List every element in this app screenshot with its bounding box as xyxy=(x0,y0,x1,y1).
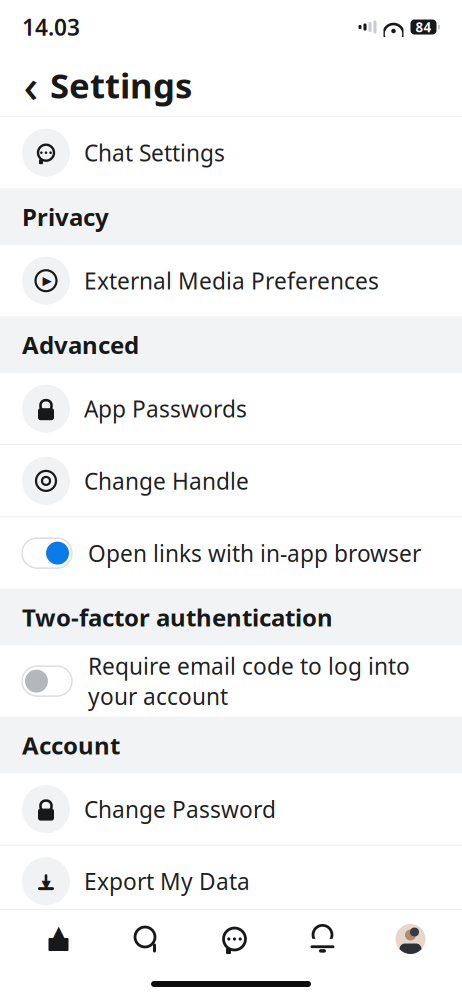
staticText: 14.03 xyxy=(22,12,80,42)
staticText: Open links with in-app browser xyxy=(88,538,421,568)
staticText: Chat Settings xyxy=(84,138,225,168)
staticText: App Passwords xyxy=(84,394,247,424)
staticText: Export My Data xyxy=(84,866,250,896)
button[interactable]: Change Handle xyxy=(0,445,462,516)
staticText: ▲ xyxy=(51,921,66,944)
staticText: Two-factor authentication xyxy=(22,601,333,633)
staticText: ‹ xyxy=(23,55,38,115)
button[interactable]: Change Password xyxy=(0,774,462,845)
staticText: 84 xyxy=(415,18,431,36)
button[interactable]: Open links with in-app browser xyxy=(0,518,462,589)
button[interactable]: ▶ xyxy=(0,245,462,316)
button[interactable]: Notifications xyxy=(278,914,366,964)
staticText: Advanced xyxy=(22,329,139,361)
staticText: ▼ xyxy=(41,877,50,891)
button[interactable]: Require email code to log into your acco… xyxy=(0,646,462,717)
staticText: Change Password xyxy=(84,794,276,824)
button[interactable]: Chats xyxy=(190,914,278,964)
button[interactable]: Search xyxy=(102,914,190,964)
button[interactable]: Profile xyxy=(366,914,454,964)
staticText: Privacy xyxy=(22,201,109,233)
staticText: Change Handle xyxy=(84,466,249,496)
staticText: Account xyxy=(22,729,120,761)
button[interactable]: Home xyxy=(14,914,102,964)
button[interactable]: Chat Settings xyxy=(0,117,462,188)
button[interactable]: ▼ xyxy=(0,846,462,917)
staticText: External Media Preferences xyxy=(84,266,379,296)
button[interactable]: App Passwords xyxy=(0,373,462,444)
button[interactable]: Back xyxy=(16,63,46,107)
staticText: Require email code to log into your acco… xyxy=(88,651,410,711)
staticText: Settings xyxy=(50,62,192,108)
staticText: ▶ xyxy=(42,274,51,287)
